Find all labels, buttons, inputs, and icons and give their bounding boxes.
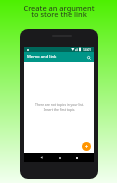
- staticText: There are not topics in your list. Inser…: [35, 102, 84, 112]
- staticText: Create an argument to store the link: [23, 3, 95, 19]
- button[interactable]: Add: [82, 142, 91, 151]
- staticText: Memo and link: [27, 54, 57, 60]
- button[interactable]: Search: [84, 53, 93, 62]
- staticText: 14:01: [83, 48, 92, 52]
